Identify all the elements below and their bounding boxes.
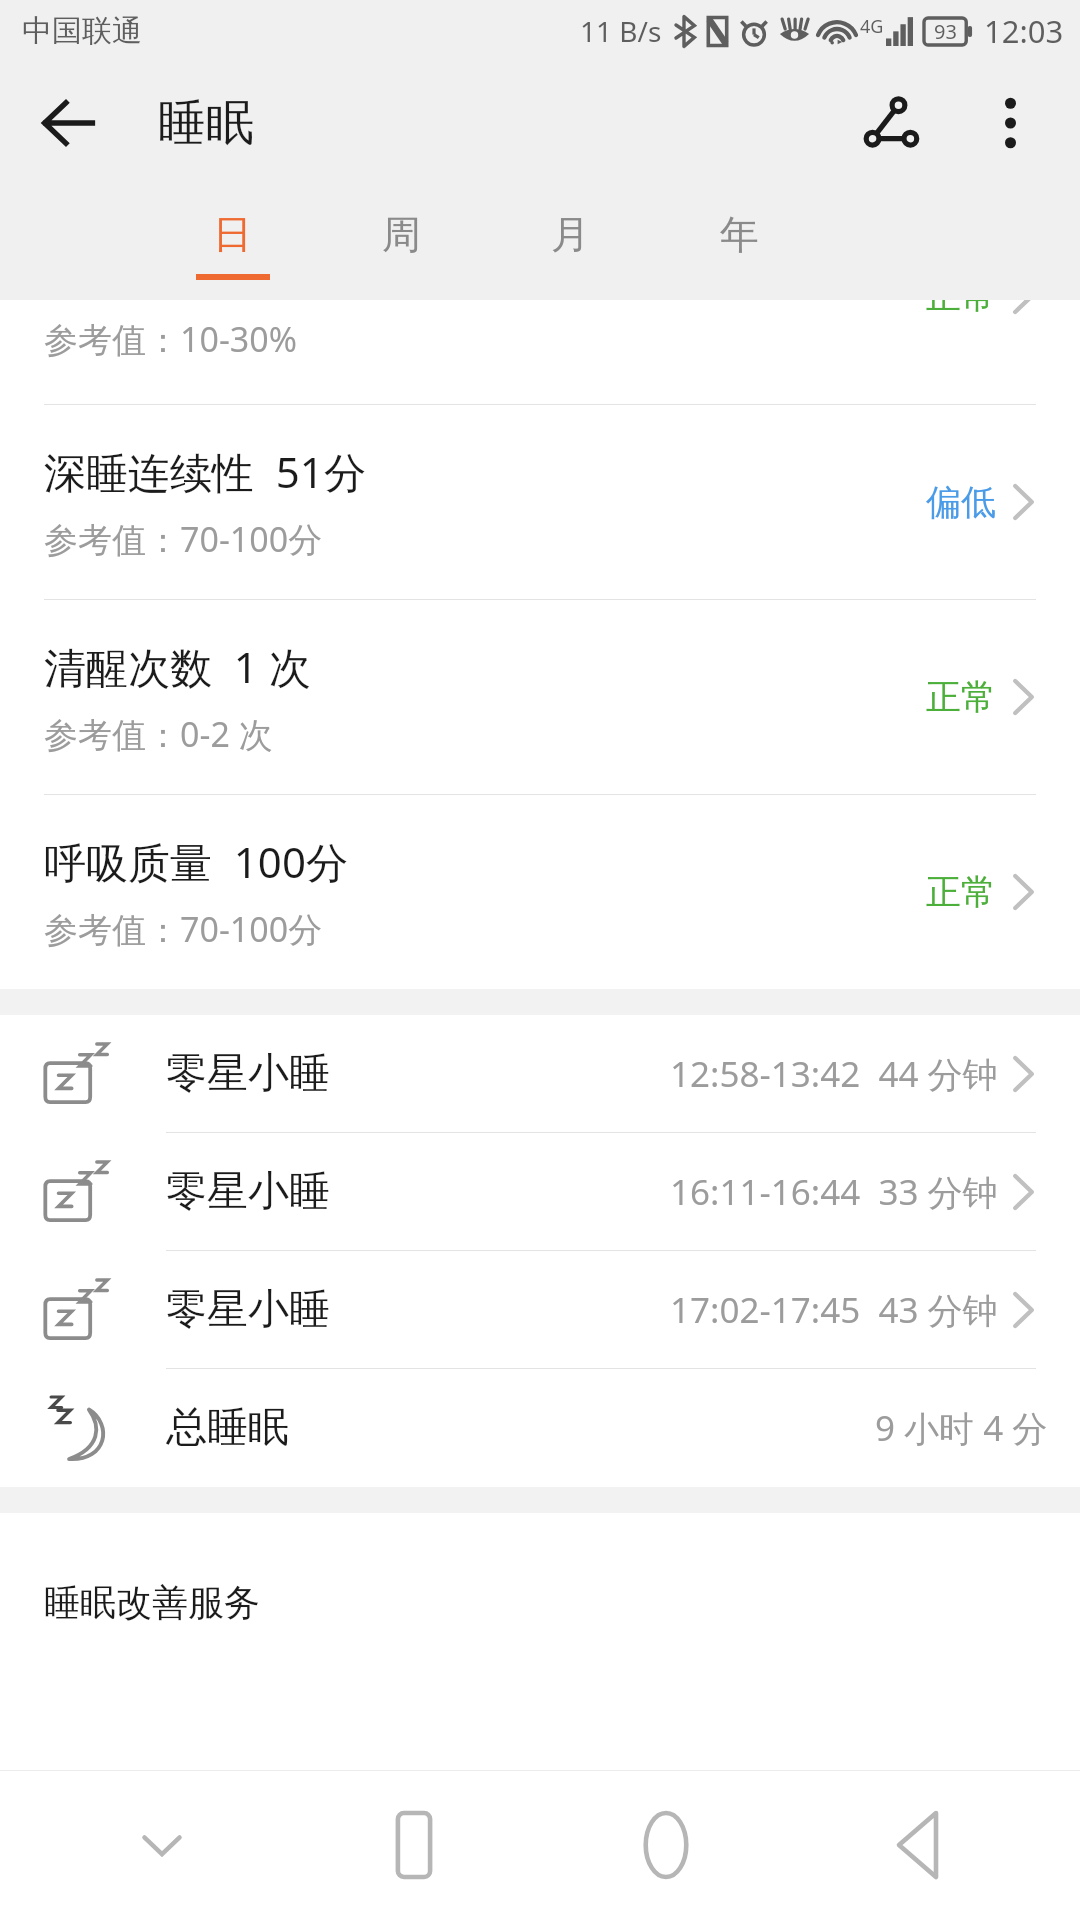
button[interactable]: 周	[317, 184, 486, 300]
button[interactable]: Share	[846, 77, 938, 169]
button[interactable]: 深睡连续性 51分	[0, 405, 1080, 599]
staticText: 睡眠改善服务	[44, 1580, 260, 1625]
staticText: 清醒次数 1 次	[44, 638, 311, 695]
button[interactable]: Hide keyboard	[36, 1770, 288, 1920]
button[interactable]: 月	[486, 184, 655, 300]
staticText: 呼吸质量 100分	[44, 833, 348, 890]
staticText: 11 B/s	[580, 12, 662, 50]
staticText: 参考值：10-30%	[44, 316, 297, 362]
staticText: 零星小睡	[166, 1284, 330, 1336]
button[interactable]: 日	[148, 184, 317, 300]
staticText: 参考值：70-100分	[44, 516, 323, 562]
staticText: 月	[551, 210, 590, 259]
button[interactable]: 零星小睡	[0, 1015, 1080, 1132]
staticText: 深睡连续性 51分	[44, 443, 366, 500]
button[interactable]: 零星小睡	[0, 1133, 1080, 1250]
staticText: 正常	[926, 870, 996, 914]
button[interactable]: 清醒次数 1 次	[0, 600, 1080, 794]
button[interactable]: More options	[964, 77, 1056, 169]
staticText: 睡眠	[158, 93, 254, 153]
button[interactable]: Recents	[288, 1770, 540, 1920]
staticText: 总睡眠	[166, 1402, 289, 1454]
staticText: 零星小睡	[166, 1166, 330, 1218]
button[interactable]: 零星小睡	[0, 1251, 1080, 1368]
staticText: 日	[213, 210, 252, 259]
staticText: 中国联通	[22, 12, 142, 50]
staticText: 正常	[926, 300, 996, 318]
button[interactable]: 参考值：10-30%	[0, 300, 1080, 404]
staticText: 93	[934, 18, 957, 45]
staticText: 年	[720, 210, 759, 259]
staticText: 零星小睡	[166, 1048, 330, 1100]
staticText: 正常	[926, 675, 996, 719]
staticText: 12:03	[984, 10, 1064, 52]
staticText: 16:11-16:44 33 分钟	[670, 1168, 998, 1216]
staticText: 偏低	[926, 480, 996, 524]
staticText: 周	[382, 210, 421, 259]
button[interactable]: Back	[26, 81, 110, 165]
button[interactable]: 睡眠改善服务	[0, 1513, 1080, 1625]
staticText: 参考值：70-100分	[44, 906, 323, 952]
staticText: 12:58-13:42 44 分钟	[670, 1050, 998, 1098]
button[interactable]: Home	[540, 1770, 792, 1920]
staticText: 9 小时 4 分	[875, 1404, 1048, 1452]
staticText: 17:02-17:45 43 分钟	[670, 1286, 998, 1334]
staticText: 4G	[860, 14, 884, 39]
button[interactable]: 总睡眠	[0, 1369, 1080, 1487]
button[interactable]: 年	[655, 184, 824, 300]
staticText: 参考值：0-2 次	[44, 711, 273, 757]
button[interactable]: Back	[792, 1770, 1044, 1920]
button[interactable]: 呼吸质量 100分	[0, 795, 1080, 989]
